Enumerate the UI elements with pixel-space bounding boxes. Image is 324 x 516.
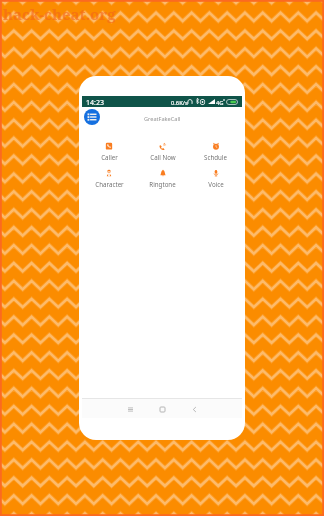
staticText: Ringtone <box>149 180 176 188</box>
staticText: 4G <box>216 99 224 107</box>
staticText: hack-cheat.org <box>3 4 116 24</box>
button[interactable]: Schdule <box>189 142 242 168</box>
staticText: 14:23 <box>86 98 104 108</box>
staticText: Schdule <box>204 153 227 161</box>
button[interactable]: Caller <box>82 142 136 168</box>
button[interactable]: Call Now <box>136 142 189 168</box>
staticText: Caller <box>101 153 118 161</box>
staticText: Voice <box>208 180 224 188</box>
button[interactable]: Recent apps <box>121 400 139 418</box>
button[interactable]: Voice <box>189 169 242 195</box>
button[interactable]: Character <box>82 169 136 195</box>
button[interactable]: Open navigation menu <box>84 109 100 125</box>
button[interactable]: Back <box>185 400 203 418</box>
button[interactable]: Home <box>153 400 171 418</box>
staticText: 0.6K/s <box>171 99 188 107</box>
button[interactable]: Ringtone <box>136 169 189 195</box>
staticText: GreatFakeCall <box>144 115 181 123</box>
staticText: Character <box>95 180 124 188</box>
staticText: Call Now <box>150 153 176 161</box>
